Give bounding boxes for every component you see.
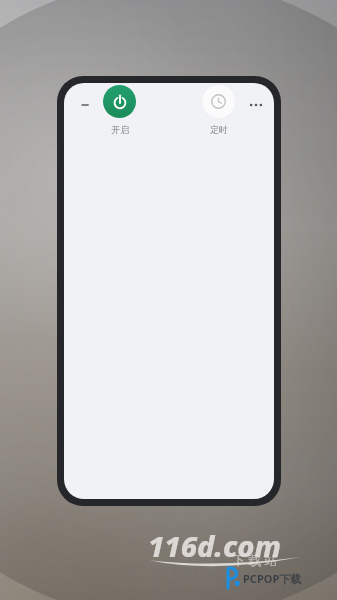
staticText: 定时 xyxy=(210,124,228,135)
staticText: PCPOP下载 xyxy=(243,571,302,586)
button[interactable]: Power on xyxy=(97,83,142,137)
staticText: 开启 xyxy=(111,124,129,135)
staticText: 116d.com xyxy=(148,526,282,565)
button[interactable]: Timer xyxy=(196,83,241,137)
staticText: 下 载 站 xyxy=(232,551,278,569)
